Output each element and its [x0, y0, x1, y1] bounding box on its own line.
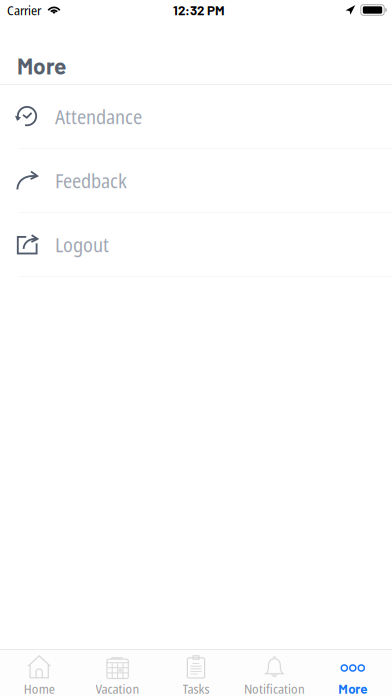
staticText: Notification: [244, 679, 305, 696]
button[interactable]: Feedback: [0, 149, 392, 213]
button[interactable]: Attendance: [0, 85, 392, 149]
staticText: Vacation: [96, 679, 140, 696]
button[interactable]: Notification: [235, 647, 314, 696]
button[interactable]: Tasks: [157, 647, 235, 696]
staticText: More: [338, 680, 367, 696]
staticText: More: [17, 52, 66, 79]
staticText: Feedback: [55, 167, 127, 194]
button[interactable]: Logout: [0, 213, 392, 277]
staticText: Tasks: [182, 679, 209, 696]
button[interactable]: Home: [0, 647, 78, 696]
button[interactable]: More: [314, 648, 392, 696]
staticText: Home: [24, 679, 55, 696]
staticText: 12:32 PM: [173, 2, 225, 18]
staticText: Carrier: [7, 1, 41, 19]
staticText: Attendance: [55, 103, 142, 130]
button[interactable]: Vacation: [78, 647, 157, 696]
staticText: Logout: [55, 231, 109, 258]
